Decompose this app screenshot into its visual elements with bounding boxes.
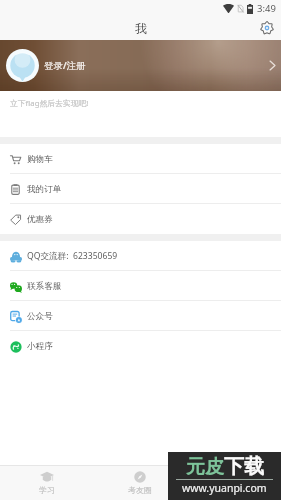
staticText: 小程序 <box>27 341 53 352</box>
staticText: 购物车 <box>27 154 53 165</box>
staticText: QQ交流群: 623350659 <box>27 250 118 262</box>
button[interactable]: 公众号 <box>0 301 281 331</box>
staticText: 下载 <box>224 454 264 479</box>
button[interactable]: 我 <box>187 466 281 500</box>
staticText: 元皮 <box>186 455 224 479</box>
staticText: 公众号 <box>27 311 53 322</box>
button[interactable]: QQ交流群: 623350659 <box>0 241 281 271</box>
staticText: 联系客服 <box>27 281 62 292</box>
button[interactable]: 我的订单 <box>0 174 281 204</box>
staticText: 学习 <box>39 485 55 495</box>
button[interactable]: 购物车 <box>0 144 281 174</box>
staticText: 我 <box>135 21 147 36</box>
staticText: 优惠券 <box>27 214 53 225</box>
button[interactable]: 学习 <box>0 466 93 500</box>
staticText: 3:49 <box>257 2 276 15</box>
staticText: 登录/注册 <box>44 59 86 72</box>
button[interactable]: 联系客服 <box>0 271 281 301</box>
button[interactable]: 小程序 <box>0 331 281 361</box>
staticText: www.yuanpi.com <box>182 481 267 495</box>
staticText: 我的订单 <box>27 184 62 195</box>
button[interactable]: 优惠券 <box>0 204 281 234</box>
staticText: 考友圈 <box>128 485 152 495</box>
button[interactable]: 登录/注册 <box>0 40 281 91</box>
staticText: 我 <box>230 485 238 495</box>
staticText: 立下flag然后去实现吧! <box>10 98 89 109</box>
button[interactable]: 考友圈 <box>93 466 187 500</box>
button[interactable]: Settings <box>256 17 278 39</box>
